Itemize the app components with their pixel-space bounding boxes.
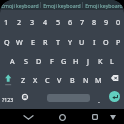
- button[interactable]: Emoji: [22, 94, 28, 100]
- button[interactable]: O: [100, 32, 112, 51]
- button[interactable]: L: [106, 51, 118, 70]
- button[interactable]: 8: [88, 12, 100, 31]
- staticText: 1: [4, 17, 9, 27]
- button[interactable]: Home: [52, 109, 73, 124]
- button[interactable]: P: [112, 32, 124, 51]
- button[interactable]: J: [82, 51, 94, 70]
- staticText: 9: [104, 17, 109, 27]
- staticText: K: [98, 56, 103, 66]
- button[interactable]: ?123: [0, 90, 16, 109]
- staticText: ?123: [2, 96, 14, 103]
- button[interactable]: G: [58, 51, 70, 70]
- button[interactable]: R: [39, 32, 52, 51]
- staticText: A: [10, 56, 15, 66]
- button[interactable]: 2: [13, 12, 26, 31]
- button[interactable]: F: [45, 51, 58, 70]
- staticText: N: [83, 75, 89, 85]
- staticText: 7: [80, 17, 85, 27]
- button[interactable]: Z: [17, 70, 29, 89]
- button[interactable]: Emoji keyboard: [83, 0, 124, 10]
- button[interactable]: Hide keyboard: [18, 109, 39, 124]
- staticText: 5: [56, 17, 61, 27]
- button[interactable]: 7: [76, 12, 88, 31]
- button[interactable]: Emoji keyboard: [0, 0, 40, 10]
- button[interactable]: 1: [0, 12, 13, 31]
- button[interactable]: D: [32, 51, 45, 70]
- staticText: C: [45, 75, 50, 85]
- button[interactable]: W: [13, 32, 26, 51]
- staticText: V: [57, 75, 62, 85]
- button[interactable]: A: [6, 51, 19, 70]
- button[interactable]: C: [41, 70, 53, 89]
- button[interactable]: M: [92, 70, 105, 89]
- staticText: B: [70, 75, 75, 85]
- button[interactable]: 3: [26, 12, 39, 31]
- staticText: Emoji keyboard: [43, 2, 81, 9]
- staticText: 4: [43, 17, 48, 27]
- button[interactable]: X: [29, 70, 41, 89]
- button[interactable]: E: [26, 32, 39, 51]
- staticText: Y: [68, 37, 73, 47]
- button[interactable]: Switch keyboard: [105, 109, 121, 124]
- button[interactable]: B: [66, 70, 79, 89]
- staticText: F: [50, 56, 54, 66]
- button[interactable]: Space: [47, 94, 90, 102]
- staticText: H: [73, 56, 79, 66]
- button[interactable]: N: [79, 70, 92, 89]
- button[interactable]: K: [94, 51, 106, 70]
- button[interactable]: 0: [112, 12, 124, 31]
- staticText: I: [93, 37, 96, 47]
- button[interactable]: .: [91, 90, 107, 109]
- button[interactable]: I: [88, 32, 100, 51]
- staticText: Q: [4, 37, 10, 47]
- staticText: 6: [68, 17, 73, 27]
- staticText: J: [87, 56, 89, 66]
- staticText: 2: [17, 17, 22, 27]
- button[interactable]: S: [19, 51, 32, 70]
- staticText: 0: [116, 17, 121, 27]
- staticText: G: [61, 56, 67, 66]
- button[interactable]: Q: [0, 32, 13, 51]
- button[interactable]: T: [52, 32, 64, 51]
- button[interactable]: 9: [100, 12, 112, 31]
- staticText: X: [33, 75, 38, 85]
- staticText: W: [16, 37, 23, 47]
- staticText: D: [36, 56, 42, 66]
- button[interactable]: H: [70, 51, 82, 70]
- button[interactable]: 5: [52, 12, 64, 31]
- staticText: T: [56, 37, 60, 47]
- staticText: U: [79, 37, 85, 47]
- button[interactable]: V: [53, 70, 66, 89]
- staticText: Z: [21, 75, 26, 85]
- button[interactable]: Y: [64, 32, 76, 51]
- staticText: R: [43, 37, 48, 47]
- staticText: M: [95, 75, 102, 85]
- staticText: L: [110, 56, 114, 66]
- staticText: E: [31, 37, 35, 47]
- staticText: O: [103, 37, 109, 47]
- staticText: 8: [92, 17, 97, 27]
- staticText: 3: [30, 17, 35, 27]
- staticText: S: [24, 56, 28, 66]
- staticText: P: [116, 37, 121, 47]
- button[interactable]: Enter: [109, 91, 120, 102]
- button[interactable]: U: [76, 32, 88, 51]
- staticText: Emoji keyboard: [85, 2, 123, 9]
- button[interactable]: Emoji keyboard: [41, 0, 82, 10]
- button[interactable]: 6: [64, 12, 76, 31]
- button[interactable]: Shift: [0, 70, 17, 89]
- button[interactable]: 4: [39, 12, 52, 31]
- button[interactable]: Backspace: [105, 70, 124, 89]
- staticText: .: [98, 95, 100, 105]
- staticText: Emoji keyboard: [1, 2, 39, 9]
- button[interactable]: Recents: [84, 109, 105, 124]
